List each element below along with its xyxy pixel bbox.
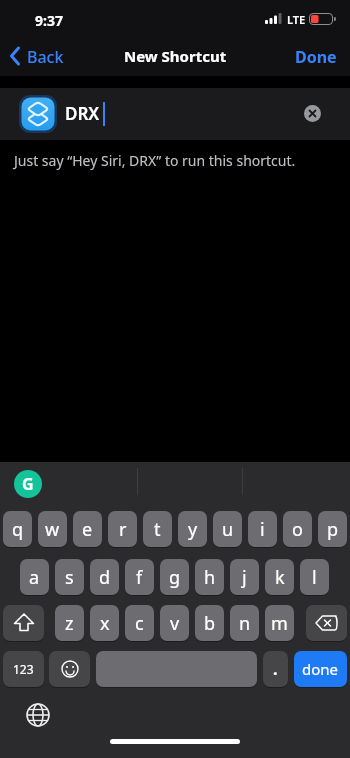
staticText: c: [135, 611, 144, 636]
button[interactable]: u: [213, 511, 242, 547]
staticText: b: [204, 611, 216, 636]
button[interactable]: o: [283, 511, 312, 547]
staticText: g: [169, 565, 181, 590]
button[interactable]: b: [195, 605, 224, 641]
staticText: Back: [27, 46, 64, 68]
button[interactable]: d: [90, 559, 119, 595]
button[interactable]: p: [318, 511, 347, 547]
staticText: o: [292, 517, 303, 542]
button[interactable]: t: [143, 511, 172, 547]
button[interactable]: j: [230, 559, 259, 595]
staticText: 123: [13, 661, 34, 677]
button[interactable]: [24, 701, 52, 729]
staticText: r: [119, 517, 127, 542]
button[interactable]: e: [73, 511, 102, 547]
button[interactable]: s: [55, 559, 84, 595]
button[interactable]: g: [160, 559, 189, 595]
staticText: 9:37: [35, 11, 63, 30]
staticText: DRX: [65, 102, 100, 125]
button[interactable]: [49, 651, 90, 687]
staticText: f: [136, 565, 143, 590]
staticText: p: [327, 517, 339, 542]
button[interactable]: l: [300, 559, 329, 595]
button[interactable]: i: [248, 511, 277, 547]
staticText: Done: [295, 46, 337, 68]
staticText: m: [271, 611, 288, 636]
staticText: i: [260, 517, 265, 542]
staticText: z: [65, 611, 74, 636]
button[interactable]: G: [14, 470, 42, 498]
button[interactable]: Back: [4, 42, 74, 72]
button[interactable]: [304, 105, 321, 122]
staticText: New Shortcut: [124, 46, 227, 66]
staticText: d: [99, 565, 111, 590]
staticText: G: [22, 473, 34, 495]
staticText: Just say “Hey Siri, DRX” to run this sho…: [14, 151, 296, 170]
staticText: x: [100, 611, 110, 636]
staticText: y: [188, 517, 198, 542]
button[interactable]: n: [230, 605, 259, 641]
button[interactable]: w: [38, 511, 67, 547]
button[interactable]: q: [3, 511, 32, 547]
button[interactable]: r: [108, 511, 137, 547]
staticText: LTE: [287, 12, 306, 27]
staticText: e: [82, 517, 93, 542]
staticText: .: [273, 658, 278, 680]
button[interactable]: Done: [288, 42, 344, 72]
button[interactable]: x: [90, 605, 119, 641]
staticText: t: [154, 517, 161, 542]
button[interactable]: f: [125, 559, 154, 595]
staticText: done: [302, 659, 339, 679]
staticText: k: [275, 565, 285, 590]
button[interactable]: y: [178, 511, 207, 547]
staticText: v: [170, 611, 180, 636]
button[interactable]: v: [160, 605, 189, 641]
staticText: q: [12, 517, 24, 542]
button[interactable]: a: [20, 559, 49, 595]
staticText: j: [242, 565, 247, 590]
staticText: l: [312, 565, 317, 590]
button[interactable]: c: [125, 605, 154, 641]
button[interactable]: z: [55, 605, 84, 641]
staticText: a: [29, 565, 40, 590]
button[interactable]: .: [263, 651, 288, 687]
button[interactable]: [96, 651, 257, 687]
button[interactable]: k: [265, 559, 294, 595]
staticText: s: [65, 565, 74, 590]
button[interactable]: h: [195, 559, 224, 595]
staticText: n: [239, 611, 251, 636]
staticText: u: [222, 517, 234, 542]
staticText: w: [45, 517, 60, 542]
button[interactable]: m: [265, 605, 294, 641]
button[interactable]: 123: [3, 651, 44, 687]
button[interactable]: [306, 605, 347, 641]
button[interactable]: DRX: [0, 88, 350, 140]
button[interactable]: [3, 605, 44, 641]
staticText: h: [204, 565, 216, 590]
button[interactable]: done: [294, 651, 347, 687]
